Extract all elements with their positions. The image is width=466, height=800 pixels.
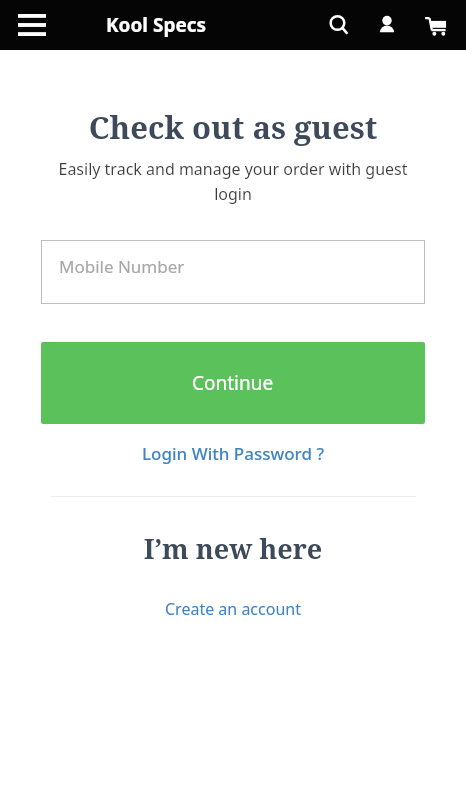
button[interactable]: Search	[322, 8, 356, 42]
button[interactable]: Mobile Number	[41, 240, 425, 304]
staticText: Create an account	[165, 598, 301, 620]
staticText: Mobile Number	[59, 255, 185, 278]
staticText: Continue	[192, 370, 274, 396]
button[interactable]: Open navigation menu	[10, 3, 54, 47]
button[interactable]: Create an account	[153, 594, 313, 624]
staticText: Easily track and manage your order with …	[42, 158, 424, 204]
staticText: Check out as guest	[0, 106, 466, 148]
button[interactable]: Continue	[41, 342, 425, 424]
staticText: Login With Password ?	[142, 442, 324, 465]
button[interactable]: Cart	[418, 8, 452, 42]
button[interactable]: Login With Password ?	[130, 438, 336, 469]
staticText: I’m new here	[0, 530, 466, 567]
button[interactable]: Account	[370, 8, 404, 42]
staticText: Kool Specs	[106, 12, 207, 38]
